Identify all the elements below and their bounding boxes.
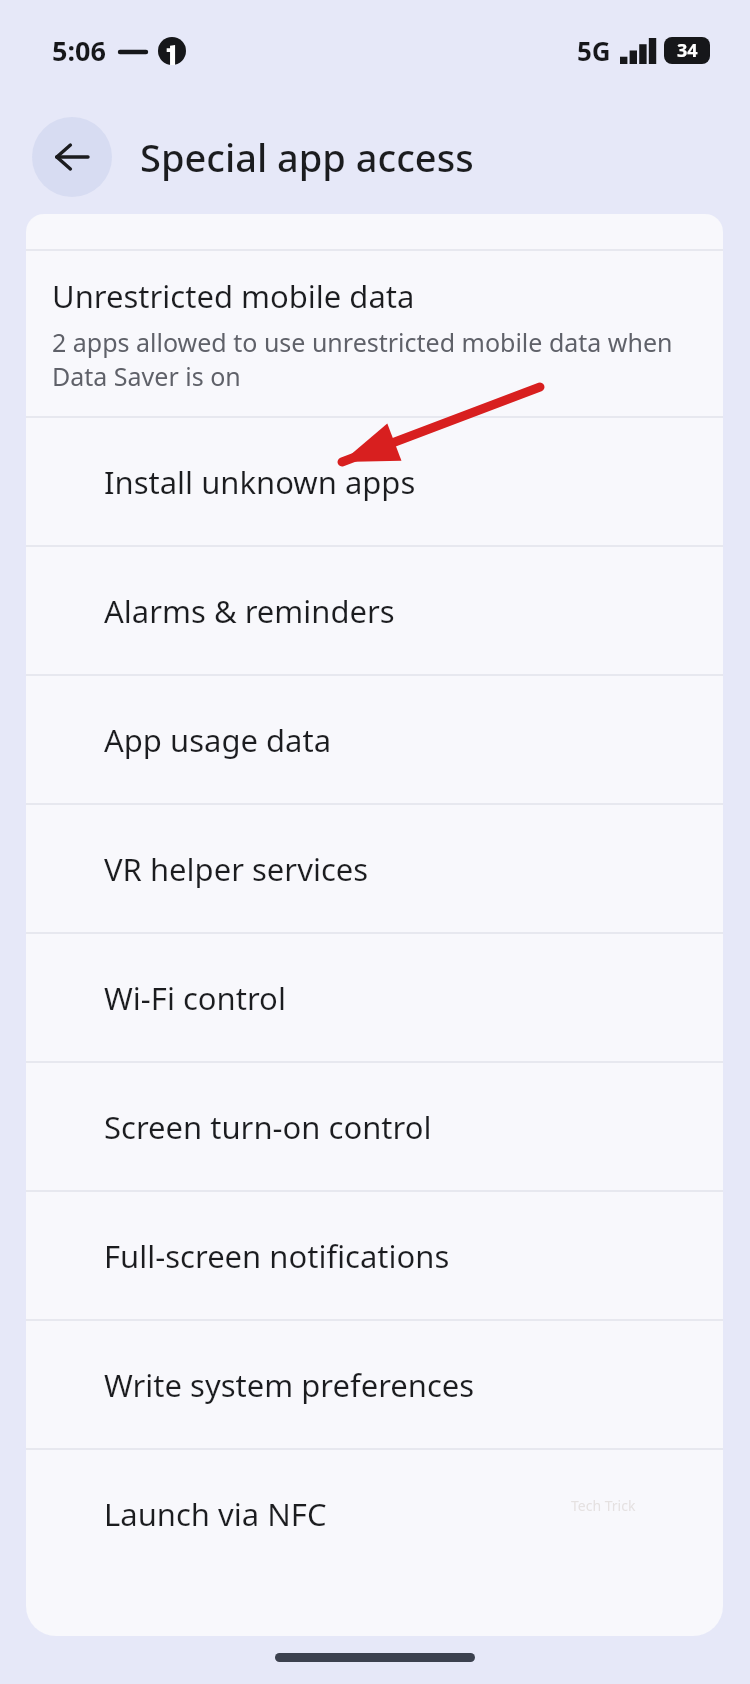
button[interactable]: Unrestricted mobile data — [26, 251, 723, 416]
staticText: Special app access — [140, 131, 474, 183]
staticText: Install unknown apps — [104, 461, 416, 503]
staticText: Tech Trick — [571, 1496, 636, 1515]
button[interactable]: Screen turn-on control — [52, 1063, 723, 1190]
button[interactable]: Wi-Fi control — [52, 934, 723, 1061]
staticText: App usage data — [104, 719, 332, 761]
staticText: Full-screen notifications — [104, 1235, 450, 1277]
button[interactable]: Full-screen notifications — [52, 1192, 723, 1319]
staticText: Launch via NFC — [104, 1493, 327, 1535]
staticText: 2 apps allowed to use unrestricted mobil… — [52, 325, 693, 393]
staticText: VR helper services — [104, 848, 369, 890]
staticText: Alarms & reminders — [104, 590, 395, 632]
staticText: 5G — [577, 33, 611, 68]
button[interactable]: Install unknown apps — [52, 418, 723, 545]
button[interactable]: Write system preferences — [52, 1321, 723, 1448]
staticText: Unrestricted mobile data — [52, 275, 415, 317]
staticText: Screen turn-on control — [104, 1106, 432, 1148]
staticText: Write system preferences — [104, 1364, 475, 1406]
button[interactable]: Back — [32, 117, 112, 197]
staticText: Wi-Fi control — [104, 977, 286, 1019]
button[interactable]: Launch via NFC — [52, 1450, 723, 1577]
staticText: 5:06 — [52, 32, 106, 69]
button[interactable]: VR helper services — [52, 805, 723, 932]
button[interactable]: Alarms & reminders — [52, 547, 723, 674]
staticText: 34 — [677, 38, 698, 63]
button[interactable]: App usage data — [52, 676, 723, 803]
